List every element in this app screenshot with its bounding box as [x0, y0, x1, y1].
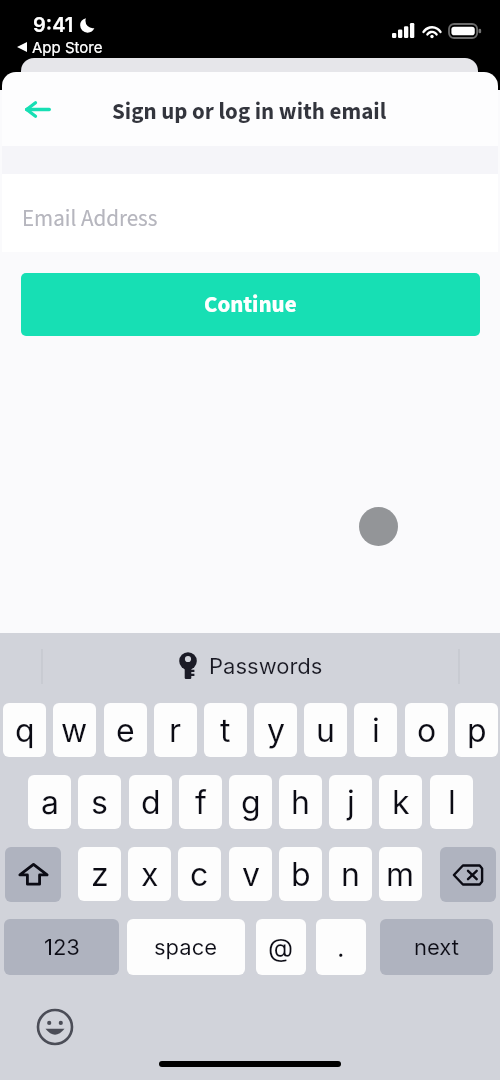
button[interactable]: g	[229, 775, 272, 829]
staticText: Continue	[204, 288, 297, 321]
staticText: l	[448, 783, 456, 822]
button[interactable]: .	[316, 919, 366, 975]
staticText: c	[190, 855, 209, 894]
button[interactable]: Emoji keyboard	[36, 1008, 74, 1046]
button[interactable]: j	[329, 775, 372, 829]
staticText: p	[467, 711, 487, 750]
button[interactable]: next	[380, 919, 493, 975]
staticText: o	[417, 711, 437, 750]
staticText: f	[195, 783, 207, 822]
button[interactable]: m	[379, 847, 422, 901]
staticText: j	[347, 783, 355, 822]
staticText: Passwords	[209, 653, 323, 680]
button[interactable]: l	[430, 775, 473, 829]
staticText: .	[337, 932, 345, 963]
staticText: z	[91, 855, 109, 894]
button[interactable]: u	[304, 703, 347, 757]
button[interactable]: n	[329, 847, 372, 901]
button[interactable]: f	[179, 775, 222, 829]
staticText: w	[61, 711, 88, 750]
button[interactable]: x	[128, 847, 171, 901]
staticText: next	[414, 934, 459, 961]
button[interactable]: @	[256, 919, 306, 975]
button[interactable]: Email Address	[2, 174, 498, 252]
button[interactable]: h	[279, 775, 322, 829]
button[interactable]: d	[129, 775, 172, 829]
button[interactable]: 123	[4, 919, 119, 975]
button[interactable]: r	[154, 703, 197, 757]
staticText: m	[386, 855, 415, 894]
staticText: 123	[44, 934, 80, 961]
button[interactable]: Backspace	[440, 847, 496, 902]
button[interactable]: i	[354, 703, 397, 757]
staticText: e	[116, 711, 135, 750]
staticText: g	[241, 783, 261, 822]
button[interactable]: space	[127, 919, 245, 975]
button[interactable]: k	[379, 775, 422, 829]
button[interactable]: s	[78, 775, 121, 829]
staticText: y	[267, 711, 285, 750]
button[interactable]: Continue	[21, 273, 480, 336]
button[interactable]: w	[53, 703, 96, 757]
staticText: space	[154, 934, 218, 961]
button[interactable]: y	[254, 703, 297, 757]
staticText: i	[372, 711, 380, 750]
staticText: d	[141, 783, 161, 822]
staticText: s	[91, 783, 108, 822]
button[interactable]: p	[455, 703, 498, 757]
staticText: 9:41	[33, 13, 74, 37]
staticText: k	[392, 783, 410, 822]
staticText: App Store	[32, 38, 103, 56]
button[interactable]: Back	[13, 85, 61, 133]
staticText: v	[242, 855, 260, 894]
staticText: n	[341, 855, 360, 894]
button[interactable]: a	[28, 775, 71, 829]
button[interactable]: c	[178, 847, 221, 901]
button[interactable]: q	[3, 703, 46, 757]
button[interactable]: z	[78, 847, 121, 901]
staticText: q	[15, 711, 35, 750]
button[interactable]: e	[104, 703, 147, 757]
staticText: @	[268, 932, 294, 963]
staticText: t	[220, 711, 231, 750]
staticText: u	[316, 711, 335, 750]
staticText: Email Address	[22, 202, 158, 235]
staticText: a	[41, 783, 59, 822]
staticText: x	[141, 855, 159, 894]
staticText: b	[291, 855, 311, 894]
staticText: Sign up or log in with email	[112, 95, 387, 128]
button[interactable]: v	[229, 847, 272, 901]
button[interactable]: b	[279, 847, 322, 901]
staticText: h	[291, 783, 310, 822]
button[interactable]: Shift	[5, 847, 61, 902]
staticText: r	[169, 711, 182, 750]
button[interactable]: t	[204, 703, 247, 757]
button[interactable]: o	[405, 703, 448, 757]
